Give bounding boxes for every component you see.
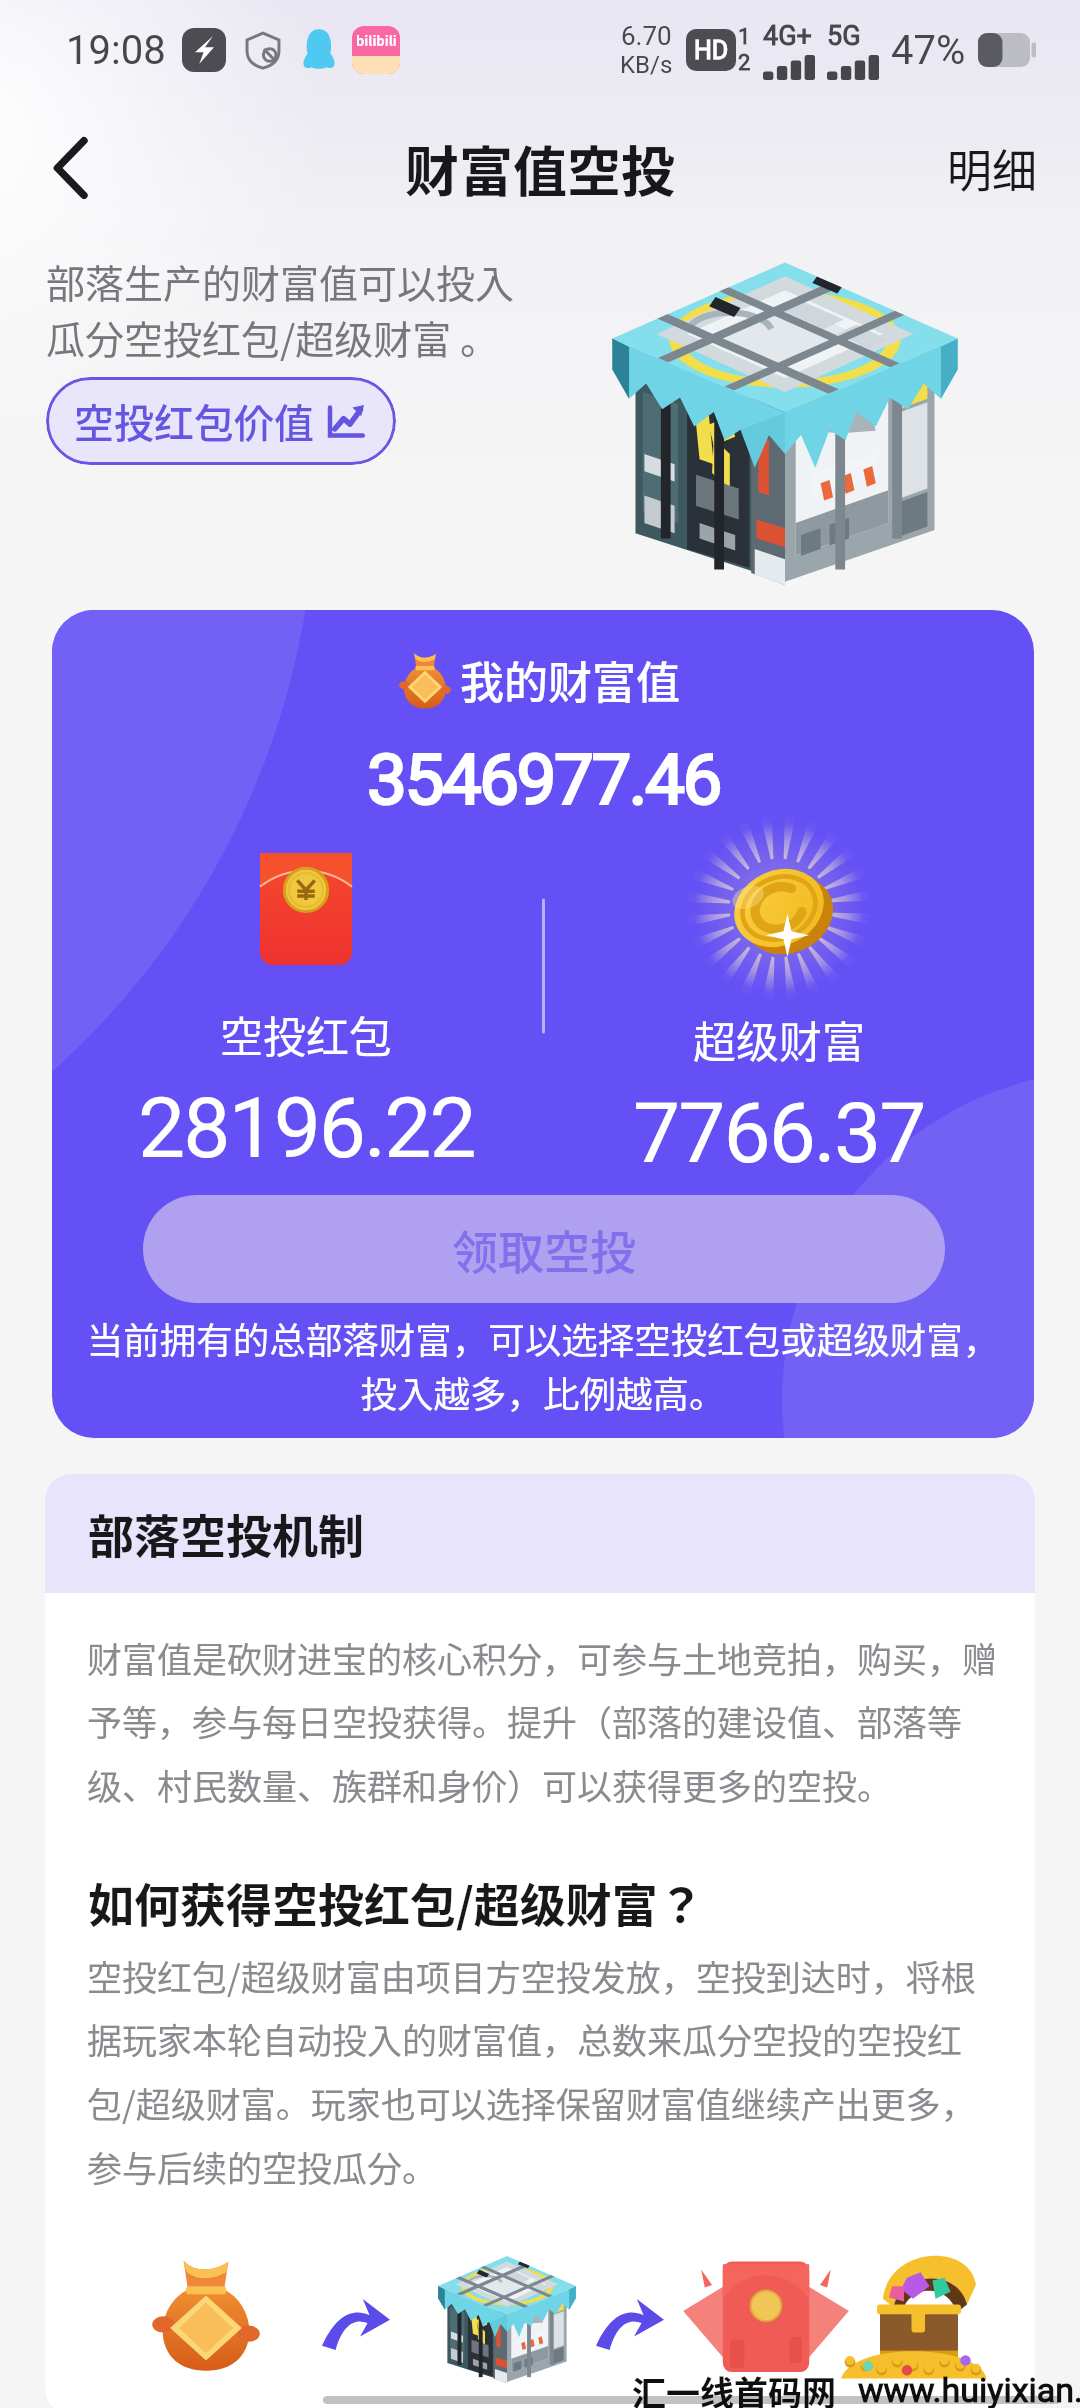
button[interactable]: Back xyxy=(26,123,116,213)
staticText: 19:08 xyxy=(66,27,166,74)
staticText: 财富值空投 xyxy=(405,129,675,207)
staticText: 超级财富 xyxy=(693,1008,865,1070)
staticText: 我的财富值 xyxy=(460,648,680,712)
staticText: bilibili xyxy=(356,31,397,50)
staticText: 空投红包/超级财富由项目方空投发放，空投到达时，将根据玩家本轮自动投入的财富值，… xyxy=(87,1950,995,2192)
staticText: 3546977.46 xyxy=(367,738,720,821)
button[interactable]: 空投红包价值 xyxy=(46,377,396,465)
button[interactable]: 领取空投 xyxy=(143,1195,945,1303)
staticText: 1 xyxy=(738,24,751,50)
staticText: 5G xyxy=(827,20,861,52)
staticText: 空投红包价值 xyxy=(74,392,314,450)
staticText: 汇一线首码网 xyxy=(632,2367,836,2408)
staticText: 2 xyxy=(738,50,751,76)
staticText: 财富值是砍财进宝的核心积分，可参与土地竞拍，购买，赠予等，参与每日空投获得。提升… xyxy=(87,1632,999,1810)
staticText: HD xyxy=(694,36,729,65)
staticText: 明细 xyxy=(947,136,1038,201)
staticText: KB/s xyxy=(620,51,673,79)
staticText: 如何获得空投红包/超级财富？ xyxy=(88,1869,704,1936)
staticText: 部落生产的财富值可以投入 xyxy=(46,253,515,309)
staticText: www.huiyixian.com xyxy=(858,2370,1080,2408)
staticText: 7766.37 xyxy=(633,1084,925,1182)
staticText: 6.70 xyxy=(621,21,672,51)
staticText: 当前拥有的总部落财富，可以选择空投红包或超级财富，投入越多，比例越高。 xyxy=(76,1312,1010,1419)
staticText: 瓜分空投红包/超级财富 。 xyxy=(46,309,500,365)
button[interactable]: 明细 xyxy=(941,130,1044,207)
staticText: 47% xyxy=(891,27,966,74)
staticText: 领取空投 xyxy=(452,1216,636,1283)
staticText: 28196.22 xyxy=(138,1079,475,1177)
staticText: 4G+ xyxy=(763,20,812,52)
staticText: 空投红包 xyxy=(220,1003,392,1065)
staticText: 部落空投机制 xyxy=(88,1500,364,1567)
